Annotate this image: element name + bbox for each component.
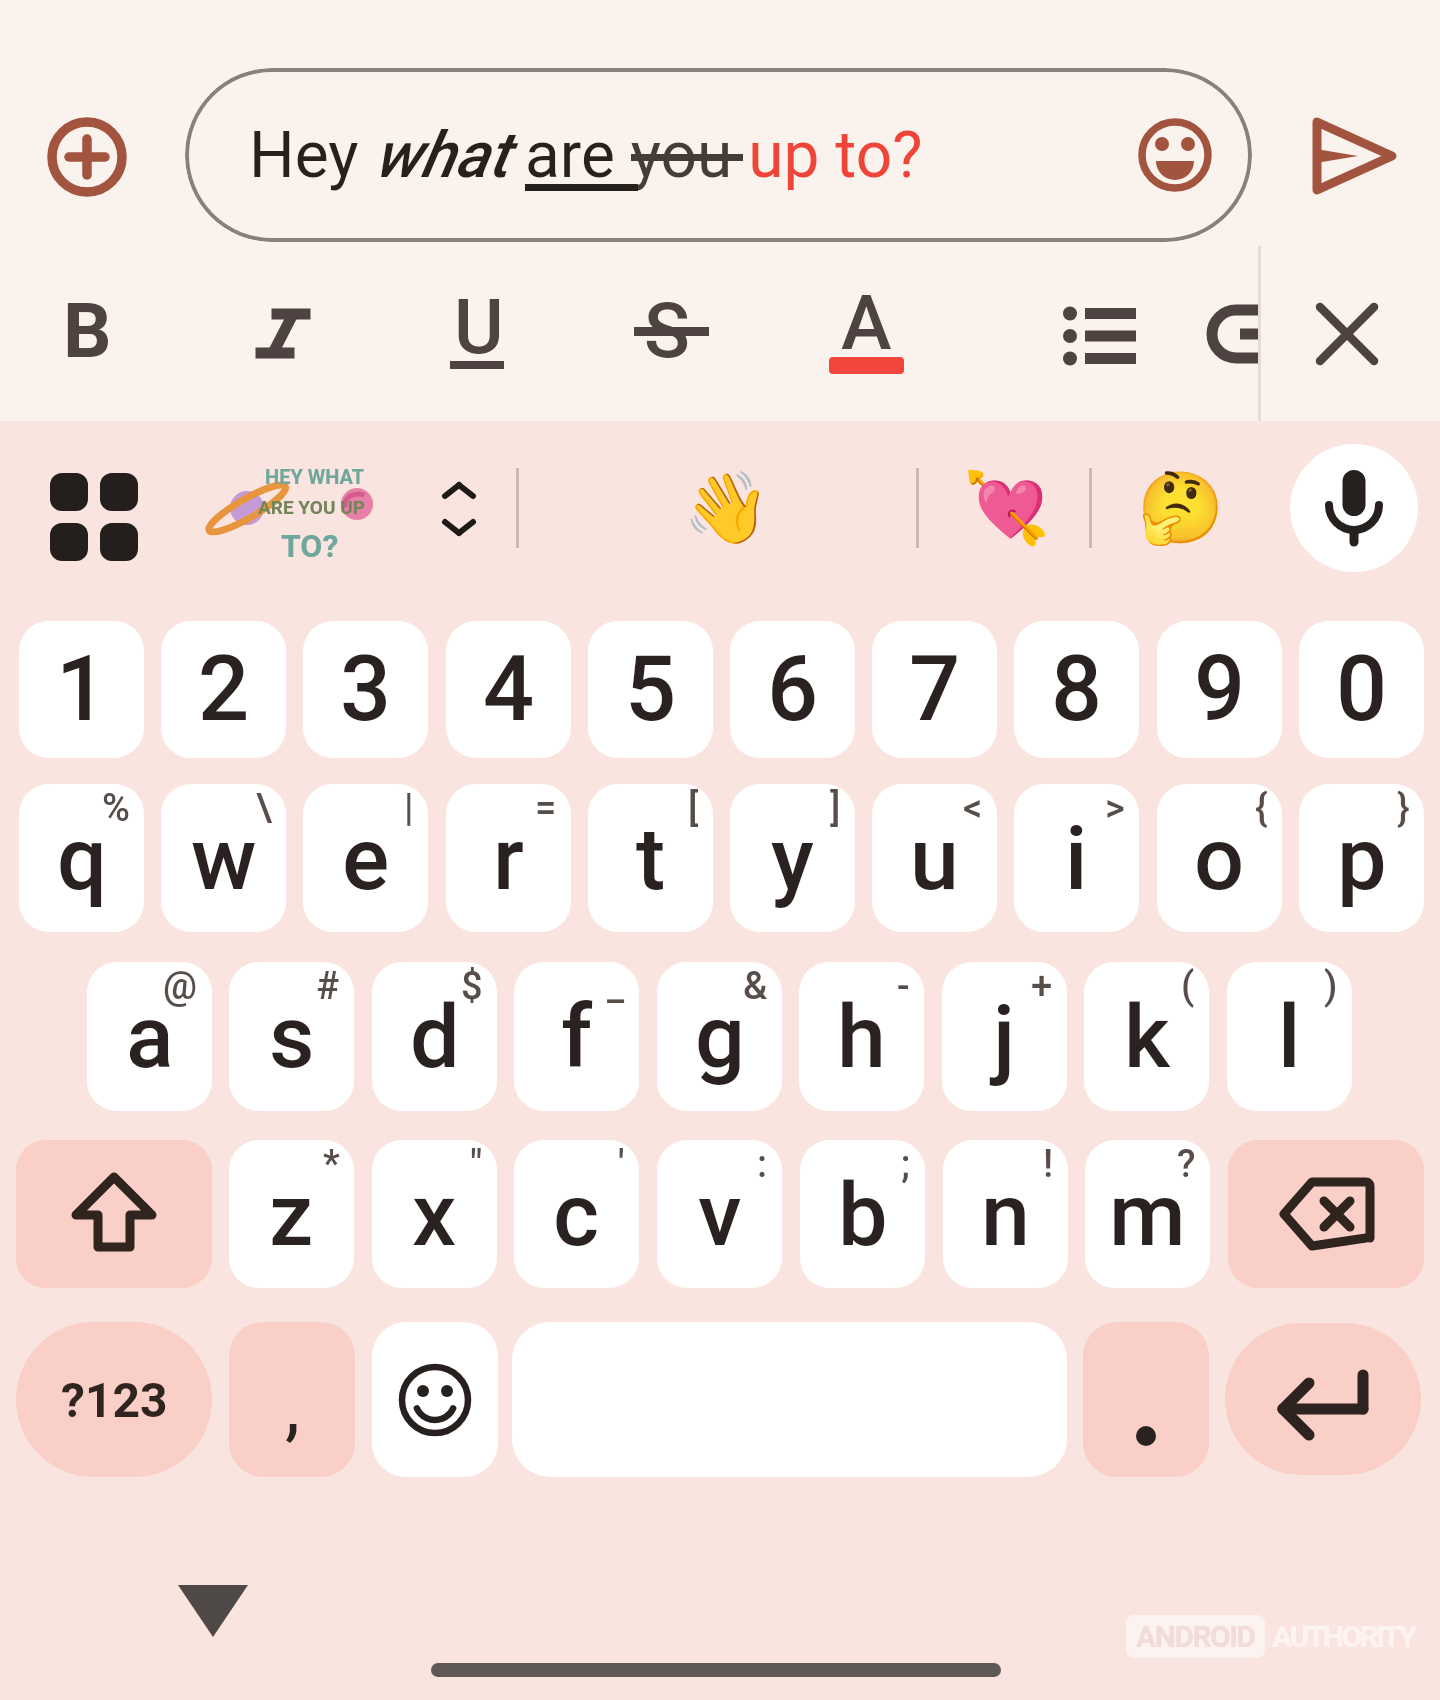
staticText: ] (830, 786, 841, 831)
button[interactable]: m (1085, 1140, 1210, 1288)
button[interactable]: r (446, 784, 571, 932)
button[interactable]: 1 (19, 621, 144, 758)
button[interactable]: 7 (872, 621, 997, 758)
button[interactable]: ?123 (16, 1322, 212, 1477)
button[interactable] (437, 483, 481, 535)
button[interactable] (1083, 1322, 1209, 1477)
button[interactable] (372, 1322, 498, 1477)
button[interactable] (16, 1140, 212, 1288)
button[interactable]: A (821, 272, 911, 372)
button[interactable]: y (730, 784, 855, 932)
button[interactable]: c (514, 1140, 639, 1288)
staticText: ?123 (61, 1372, 168, 1428)
staticText: ANDROID (1136, 1619, 1255, 1654)
staticText: { (1255, 786, 1268, 831)
button[interactable]: 0 (1299, 621, 1424, 758)
staticText: * (323, 1142, 340, 1187)
button[interactable]: f (514, 962, 639, 1111)
button[interactable]: w (161, 784, 286, 932)
button[interactable]: Hey what are you up to? (185, 68, 1252, 242)
button[interactable]: z (229, 1140, 354, 1288)
staticText: Hey what are you up to? (249, 118, 923, 193)
staticText: ' (618, 1142, 625, 1187)
button[interactable]: S (622, 280, 712, 380)
button[interactable]: 🤔 (1134, 461, 1228, 555)
button[interactable]: b (800, 1140, 925, 1288)
button[interactable]: h (799, 962, 924, 1111)
staticText: y (771, 807, 814, 910)
button[interactable]: 3 (303, 621, 428, 758)
staticText: j (993, 985, 1016, 1088)
button[interactable]: 👋 (680, 461, 774, 555)
staticText: 4 (483, 637, 535, 742)
staticText: | (404, 786, 414, 831)
button[interactable]: g (657, 962, 782, 1111)
button[interactable]: n (943, 1140, 1068, 1288)
button[interactable] (178, 1585, 248, 1641)
button[interactable]: p (1299, 784, 1424, 932)
button[interactable]: i (1014, 784, 1139, 932)
button[interactable]: k (1084, 962, 1209, 1111)
button[interactable] (1135, 115, 1215, 195)
button[interactable]: , (229, 1322, 355, 1477)
staticText: = (535, 786, 557, 831)
staticText: - (897, 964, 910, 1009)
button[interactable] (1228, 1140, 1424, 1288)
staticText: g (695, 985, 745, 1088)
button[interactable] (1315, 302, 1379, 366)
staticText: 3 (340, 637, 392, 742)
button[interactable]: 8 (1014, 621, 1139, 758)
button[interactable]: 9 (1157, 621, 1282, 758)
button[interactable]: o (1157, 784, 1282, 932)
staticText: TO? (281, 527, 339, 565)
staticText: d (410, 985, 460, 1088)
staticText: h (837, 985, 886, 1088)
button[interactable]: t (588, 784, 713, 932)
button[interactable]: 2 (161, 621, 286, 758)
button[interactable]: HEY WHAT (222, 465, 382, 573)
button[interactable]: d (372, 962, 497, 1111)
button[interactable]: q (19, 784, 144, 932)
staticText: e (342, 807, 390, 910)
button[interactable]: v (657, 1140, 782, 1288)
staticText: 2 (198, 637, 250, 742)
staticText: @ (163, 964, 198, 1009)
staticText: v (698, 1163, 742, 1266)
staticText: m (1109, 1163, 1186, 1266)
button[interactable]: e (303, 784, 428, 932)
staticText: p (1337, 807, 1387, 910)
staticText: f (561, 985, 593, 1088)
button[interactable]: 5 (588, 621, 713, 758)
button[interactable] (50, 473, 138, 561)
button[interactable] (1290, 444, 1418, 572)
staticText: q (57, 807, 107, 910)
button[interactable]: U (434, 276, 524, 376)
button[interactable]: j (942, 962, 1067, 1111)
button[interactable]: 💘 (960, 461, 1054, 555)
button[interactable] (243, 293, 323, 373)
staticText: b (838, 1163, 888, 1266)
button[interactable] (1225, 1323, 1421, 1475)
button[interactable] (1055, 300, 1145, 372)
button[interactable]: B (42, 280, 132, 380)
button[interactable]: l (1227, 962, 1352, 1111)
button[interactable]: s (229, 962, 354, 1111)
staticText: z (269, 1163, 314, 1266)
staticText: t (636, 807, 666, 910)
staticText: a (126, 985, 174, 1088)
button[interactable]: a (87, 962, 212, 1111)
button[interactable]: x (372, 1140, 497, 1288)
button[interactable] (1312, 112, 1398, 200)
button[interactable]: 4 (446, 621, 571, 758)
staticText: 0 (1336, 637, 1388, 742)
button[interactable] (512, 1322, 1067, 1477)
button[interactable]: 6 (730, 621, 855, 758)
button[interactable] (47, 117, 127, 197)
staticText: ( (1181, 964, 1195, 1009)
staticText: & (743, 964, 768, 1009)
staticText: l (1278, 985, 1301, 1088)
staticText: 💘 (963, 467, 1051, 549)
staticText: ; (901, 1142, 911, 1187)
button[interactable]: u (872, 784, 997, 932)
staticText: % (102, 786, 130, 831)
